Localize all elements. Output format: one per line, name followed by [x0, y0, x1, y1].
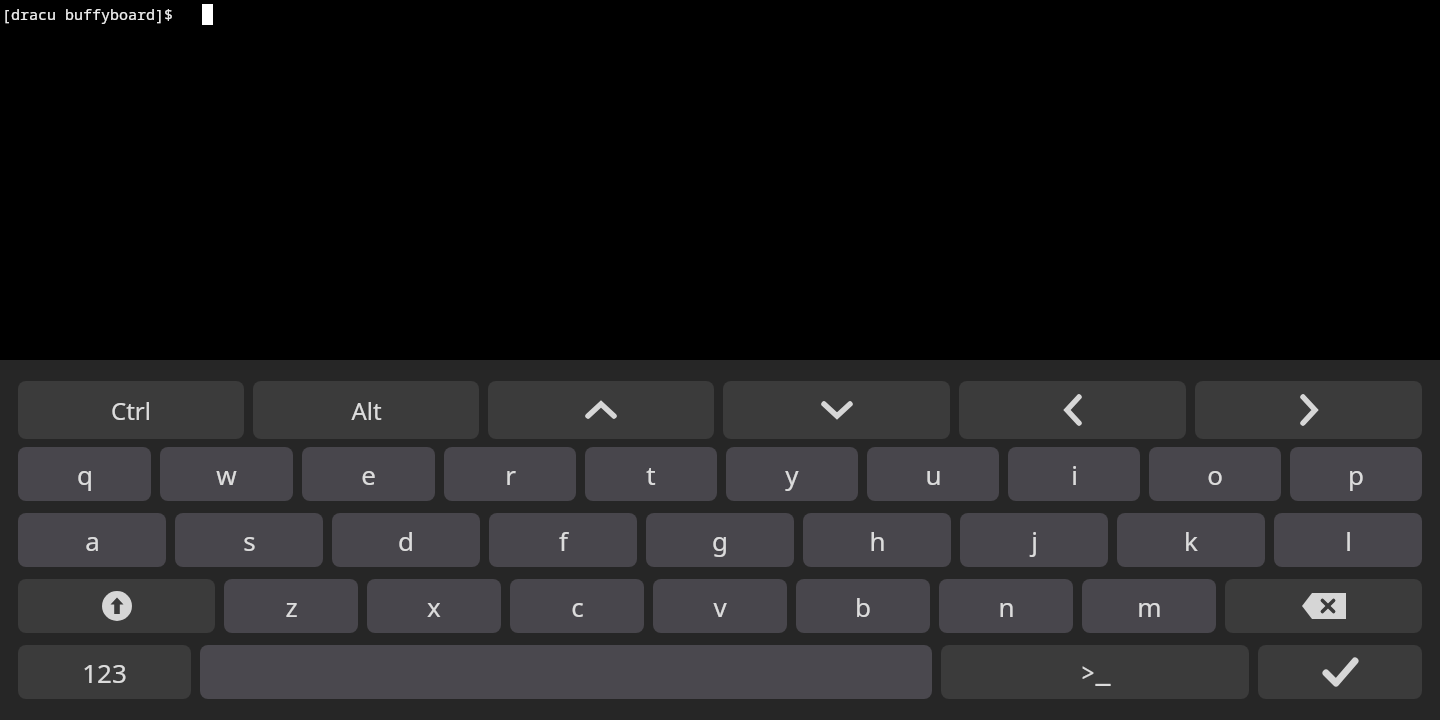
button[interactable]: 123 [18, 645, 191, 699]
button[interactable]: s [175, 513, 323, 567]
staticText: n [998, 589, 1015, 624]
staticText: s [243, 523, 256, 558]
button[interactable]: u [867, 447, 999, 501]
staticText: [dracu buffyboard]$ [2, 4, 174, 24]
button[interactable]: z [224, 579, 358, 633]
button[interactable]: r [444, 447, 576, 501]
button[interactable]: q [18, 447, 151, 501]
button[interactable]: >_ [941, 645, 1249, 699]
staticText: g [712, 523, 728, 558]
button[interactable]: x [367, 579, 501, 633]
staticText: q [77, 457, 93, 492]
button[interactable]: Ctrl [18, 381, 244, 439]
button[interactable]: k [1117, 513, 1265, 567]
button[interactable]: Arrow left [959, 381, 1186, 439]
staticText: c [571, 589, 584, 624]
button[interactable]: y [726, 447, 858, 501]
button[interactable]: d [332, 513, 480, 567]
button[interactable]: Arrow up [488, 381, 714, 439]
staticText: w [216, 457, 237, 492]
staticText: i [1071, 457, 1078, 492]
staticText: b [855, 589, 871, 624]
button[interactable]: Enter [1258, 645, 1422, 699]
staticText: x [427, 589, 441, 624]
staticText: e [361, 457, 376, 492]
button[interactable]: t [585, 447, 717, 501]
staticText: t [646, 457, 656, 492]
button[interactable]: Shift [18, 579, 215, 633]
button[interactable]: v [653, 579, 787, 633]
button[interactable]: Alt [253, 381, 479, 439]
button[interactable]: h [803, 513, 951, 567]
staticText: Alt [351, 394, 382, 427]
button[interactable]: o [1149, 447, 1281, 501]
button[interactable]: m [1082, 579, 1216, 633]
button[interactable]: a [18, 513, 166, 567]
staticText: >_ [1080, 655, 1111, 689]
staticText: f [559, 523, 568, 558]
button[interactable]: l [1274, 513, 1422, 567]
button[interactable]: p [1290, 447, 1422, 501]
button[interactable]: e [302, 447, 435, 501]
staticText: Ctrl [111, 394, 151, 427]
staticText: m [1137, 589, 1162, 624]
staticText: u [925, 457, 942, 492]
button[interactable]: f [489, 513, 637, 567]
staticText: h [869, 523, 886, 558]
staticText: y [785, 457, 799, 492]
button[interactable]: g [646, 513, 794, 567]
staticText: v [713, 589, 727, 624]
staticText: a [85, 523, 100, 558]
staticText: k [1184, 523, 1198, 558]
staticText: r [505, 457, 516, 492]
staticText: p [1348, 457, 1364, 492]
button[interactable]: b [796, 579, 930, 633]
button[interactable]: Arrow down [723, 381, 950, 439]
staticText: j [1031, 523, 1038, 558]
staticText: z [285, 589, 298, 624]
staticText: l [1345, 523, 1352, 558]
staticText: 123 [82, 655, 127, 690]
button[interactable]: w [160, 447, 293, 501]
button[interactable]: n [939, 579, 1073, 633]
button[interactable]: i [1008, 447, 1140, 501]
staticText: d [398, 523, 414, 558]
staticText: o [1207, 457, 1223, 492]
button[interactable]: j [960, 513, 1108, 567]
button[interactable]: c [510, 579, 644, 633]
button[interactable]: Arrow right [1195, 381, 1422, 439]
button[interactable]: Backspace [1225, 579, 1422, 633]
